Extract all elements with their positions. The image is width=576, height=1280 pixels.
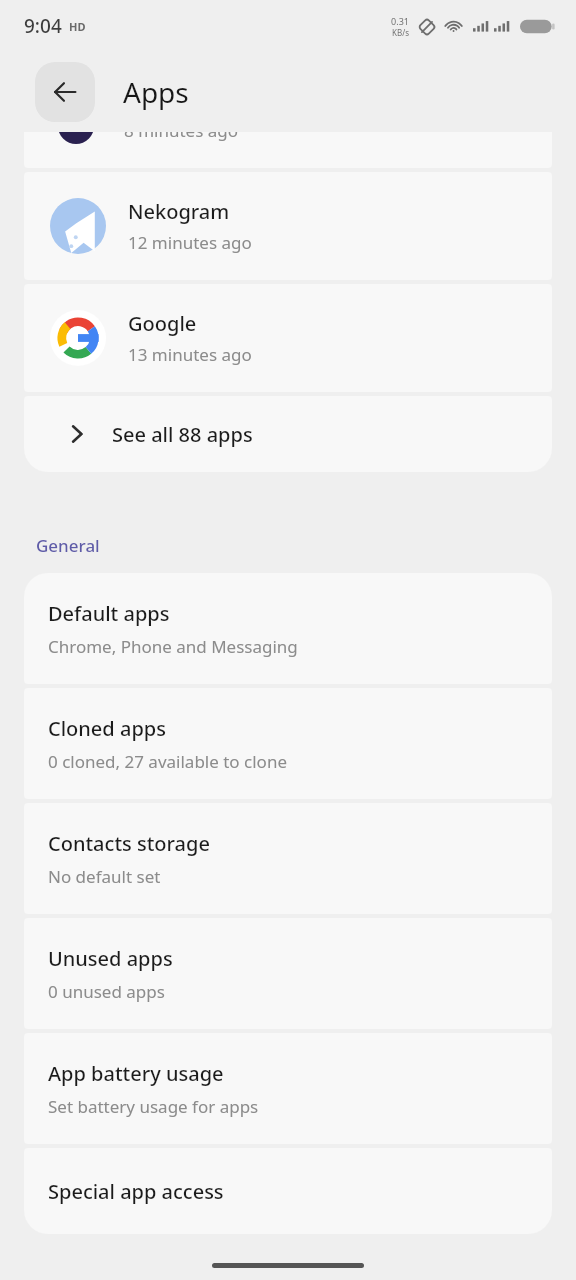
button[interactable]: App battery usage: [24, 1033, 552, 1144]
button[interactable]: See all 88 apps: [24, 396, 552, 472]
staticText: Chrome, Phone and Messaging: [48, 635, 298, 658]
staticText: Set battery usage for apps: [48, 1095, 259, 1118]
staticText: Cloned apps: [48, 715, 166, 742]
button[interactable]: Unused apps: [24, 918, 552, 1029]
button[interactable]: Default apps: [24, 573, 552, 684]
staticText: 13 minutes ago: [128, 343, 252, 366]
button[interactable]: Special app access: [24, 1148, 552, 1234]
staticText: No default set: [48, 865, 161, 888]
staticText: 9:04: [24, 13, 62, 39]
button[interactable]: Cloned apps: [24, 688, 552, 799]
staticText: 12 minutes ago: [128, 231, 252, 254]
staticText: HD: [69, 19, 86, 34]
staticText: Contacts storage: [48, 830, 210, 857]
staticText: 0 cloned, 27 available to clone: [48, 750, 288, 773]
staticText: Special app access: [48, 1178, 224, 1205]
staticText: Google: [128, 310, 197, 337]
button[interactable]: Contacts storage: [24, 803, 552, 914]
staticText: Nekogram: [128, 198, 230, 225]
staticText: See all 88 apps: [112, 421, 253, 448]
button[interactable]: Nekogram: [24, 172, 552, 280]
staticText: 0 unused apps: [48, 980, 165, 1003]
button[interactable]: 8 minutes ago: [24, 132, 552, 168]
staticText: Apps: [123, 73, 189, 111]
button[interactable]: Back: [35, 62, 95, 122]
staticText: Default apps: [48, 600, 170, 627]
staticText: App battery usage: [48, 1060, 224, 1087]
staticText: 0.31: [391, 15, 409, 27]
staticText: General: [36, 534, 100, 557]
staticText: KB/s: [392, 27, 409, 38]
button[interactable]: Google: [24, 284, 552, 392]
staticText: 8 minutes ago: [124, 132, 239, 142]
staticText: Unused apps: [48, 945, 173, 972]
